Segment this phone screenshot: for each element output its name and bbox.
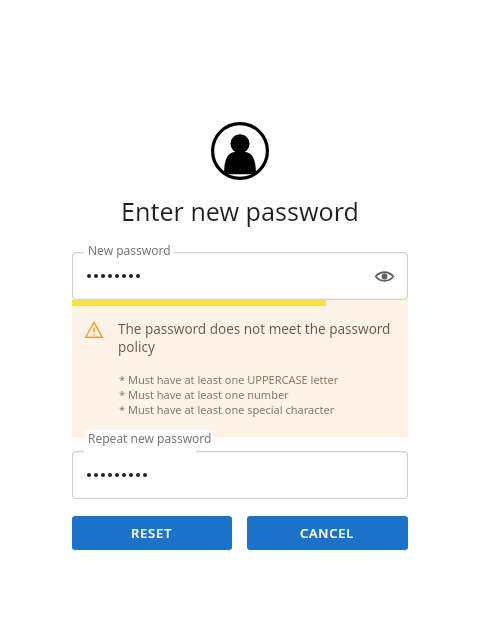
staticText: The password does not meet the password …	[118, 320, 408, 356]
button[interactable]: CANCEL	[247, 516, 408, 550]
staticText: Enter new password	[0, 194, 480, 228]
staticText: Repeat new password	[88, 430, 212, 446]
button[interactable]: Show password	[369, 261, 399, 291]
button[interactable]	[72, 451, 408, 499]
button[interactable]: Show password	[72, 252, 408, 300]
staticText: * Must have at least one special charact…	[119, 402, 335, 417]
button[interactable]: RESET	[72, 516, 232, 550]
staticText: CANCEL	[300, 524, 355, 542]
staticText: * Must have at least one number	[119, 387, 289, 402]
staticText: New password	[88, 242, 171, 258]
staticText: * Must have at least one UPPERCASE lette…	[119, 372, 339, 387]
staticText: RESET	[131, 524, 173, 542]
